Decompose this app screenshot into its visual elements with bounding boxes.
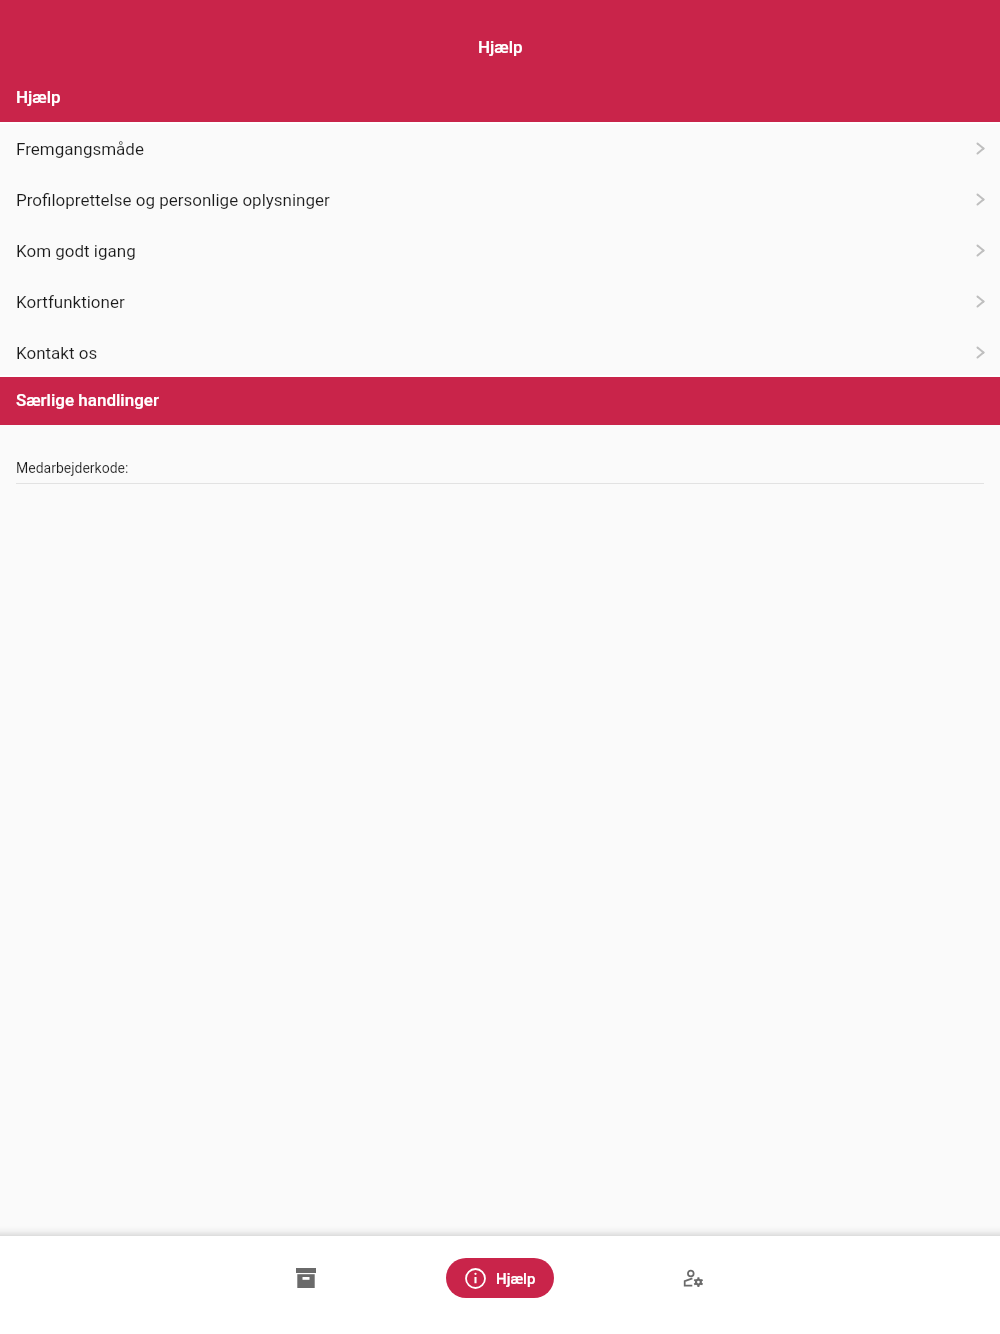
button[interactable]: Fremgangsmåde — [0, 122, 1000, 173]
staticText: Kontakt os — [16, 343, 98, 363]
staticText: Særlige handlinger — [16, 390, 159, 410]
button[interactable]: Arkiv — [278, 1250, 334, 1306]
button[interactable]: Kortfunktioner — [0, 275, 1000, 326]
button[interactable]: Hjælp — [446, 1258, 554, 1298]
staticText: Profiloprettelse og personlige oplysning… — [16, 190, 330, 210]
staticText: Hjælp — [16, 87, 61, 107]
button[interactable]: Medarbejderkode: — [0, 425, 1000, 495]
staticText: Fremgangsmåde — [16, 139, 144, 159]
button[interactable]: Profiloprettelse og personlige oplysning… — [0, 173, 1000, 224]
button[interactable]: Kontakt os — [0, 326, 1000, 377]
staticText: Hjælp — [478, 37, 523, 57]
staticText: Medarbejderkode: — [16, 460, 129, 476]
staticText: Kortfunktioner — [16, 292, 125, 312]
button[interactable]: Administrer konto — [666, 1250, 722, 1306]
staticText: Hjælp — [496, 1270, 536, 1288]
button[interactable]: Kom godt igang — [0, 224, 1000, 275]
staticText: Kom godt igang — [16, 241, 136, 261]
